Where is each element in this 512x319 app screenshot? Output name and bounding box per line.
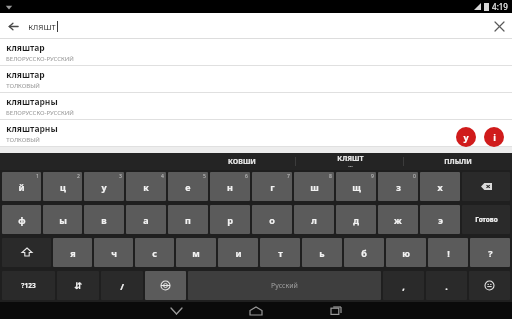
staticText: 1 — [36, 173, 39, 180]
staticText: 9 — [371, 173, 374, 180]
staticText: ф — [18, 214, 26, 226]
button[interactable]: ?123 — [2, 271, 55, 300]
button[interactable]: ь — [302, 238, 342, 267]
button[interactable]: а — [126, 205, 166, 234]
staticText: у — [101, 181, 107, 193]
button[interactable]: й — [2, 172, 41, 201]
staticText: 8 — [329, 173, 332, 180]
button[interactable]: в — [84, 205, 124, 234]
staticText: ж — [394, 214, 402, 226]
staticText: г — [270, 181, 275, 193]
staticText: кляштар — [6, 69, 45, 81]
staticText: ПЛЫЛИ — [444, 157, 472, 167]
button[interactable]: ю — [386, 238, 426, 267]
button[interactable]: ф — [2, 205, 41, 234]
staticText: Готово — [475, 215, 498, 224]
staticText: м — [192, 247, 200, 259]
button[interactable]: я — [53, 238, 92, 267]
staticText: ш — [310, 181, 319, 193]
staticText: с — [152, 247, 157, 259]
button[interactable]: ! — [428, 238, 468, 267]
button[interactable]: Back — [136, 302, 216, 319]
button[interactable]: emoji — [469, 271, 510, 300]
button[interactable]: globe — [145, 271, 186, 300]
button[interactable]: кляштарны — [0, 93, 512, 119]
button[interactable]: ? — [470, 238, 510, 267]
button[interactable]: Готово — [462, 205, 510, 234]
button[interactable]: н — [210, 172, 250, 201]
staticText: ы — [59, 214, 67, 226]
button[interactable]: б — [344, 238, 384, 267]
staticText: ТОЛКОВЫЙ — [6, 82, 40, 90]
button[interactable]: э — [420, 205, 460, 234]
button[interactable]: д — [336, 205, 376, 234]
staticText: в — [101, 214, 107, 226]
staticText: , — [402, 280, 405, 292]
button[interactable]: е — [168, 172, 208, 201]
staticText: к — [143, 181, 149, 193]
staticText: 4 — [161, 173, 164, 180]
button[interactable]: ы — [43, 205, 82, 234]
button[interactable]: кляштарны — [0, 120, 512, 146]
staticText: я — [70, 247, 76, 259]
staticText: р — [227, 214, 233, 226]
staticText: ч — [111, 247, 117, 259]
button[interactable]: Home — [216, 302, 296, 319]
button[interactable]: Info — [484, 127, 504, 147]
button[interactable]: bksp — [462, 172, 510, 201]
button[interactable]: . — [426, 271, 467, 300]
staticText: д — [353, 214, 359, 226]
button[interactable]: л — [294, 205, 334, 234]
button[interactable]: у — [84, 172, 124, 201]
button[interactable]: set — [57, 271, 99, 300]
staticText: 6 — [245, 173, 248, 180]
staticText: КЛЯШТ — [337, 154, 364, 164]
staticText: э — [438, 214, 443, 226]
button[interactable]: КОВШИ — [188, 153, 296, 170]
button[interactable]: ш — [294, 172, 334, 201]
button[interactable]: р — [210, 205, 250, 234]
button[interactable]: п — [168, 205, 208, 234]
button[interactable]: Back — [0, 13, 26, 39]
staticText: / — [120, 280, 124, 292]
button[interactable]: и — [218, 238, 258, 267]
staticText: ••• — [348, 164, 353, 169]
staticText: Русский — [271, 281, 298, 291]
button[interactable]: з — [378, 172, 418, 201]
staticText: у — [463, 131, 469, 143]
button[interactable]: кляштар — [0, 66, 512, 92]
staticText: . — [445, 280, 448, 292]
staticText: ! — [447, 247, 450, 259]
staticText: 5 — [203, 173, 206, 180]
button[interactable]: х — [420, 172, 460, 201]
button[interactable]: ц — [43, 172, 82, 201]
button[interactable]: Русский — [188, 271, 381, 300]
button[interactable]: ПЛЫЛИ — [404, 153, 512, 170]
button[interactable]: г — [252, 172, 292, 201]
button[interactable]: о — [252, 205, 292, 234]
button[interactable]: Recents — [296, 302, 376, 319]
staticText: т — [278, 247, 283, 259]
button[interactable]: КЛЯШТ — [296, 153, 404, 170]
button[interactable]: щ — [336, 172, 376, 201]
staticText: 3 — [119, 173, 122, 180]
button[interactable]: , — [383, 271, 424, 300]
button[interactable]: Clear — [486, 13, 512, 39]
button[interactable]: с — [135, 238, 174, 267]
staticText: н — [227, 181, 233, 193]
button[interactable]: shift — [2, 238, 51, 267]
button[interactable]: т — [260, 238, 300, 267]
button[interactable]: кляштар — [0, 39, 512, 65]
button[interactable]: Speak — [456, 127, 476, 147]
button[interactable]: м — [176, 238, 216, 267]
staticText: кляштарны — [6, 123, 58, 135]
staticText: кляшт — [28, 20, 56, 32]
button[interactable]: ж — [378, 205, 418, 234]
button[interactable]: / — [101, 271, 143, 300]
button[interactable]: к — [126, 172, 166, 201]
staticText: х — [437, 181, 443, 193]
button[interactable]: ч — [94, 238, 133, 267]
staticText: БЕЛОРУССКО-РУССКИЙ — [6, 55, 74, 63]
staticText: ⇵ — [74, 281, 82, 291]
staticText: 7 — [287, 173, 290, 180]
